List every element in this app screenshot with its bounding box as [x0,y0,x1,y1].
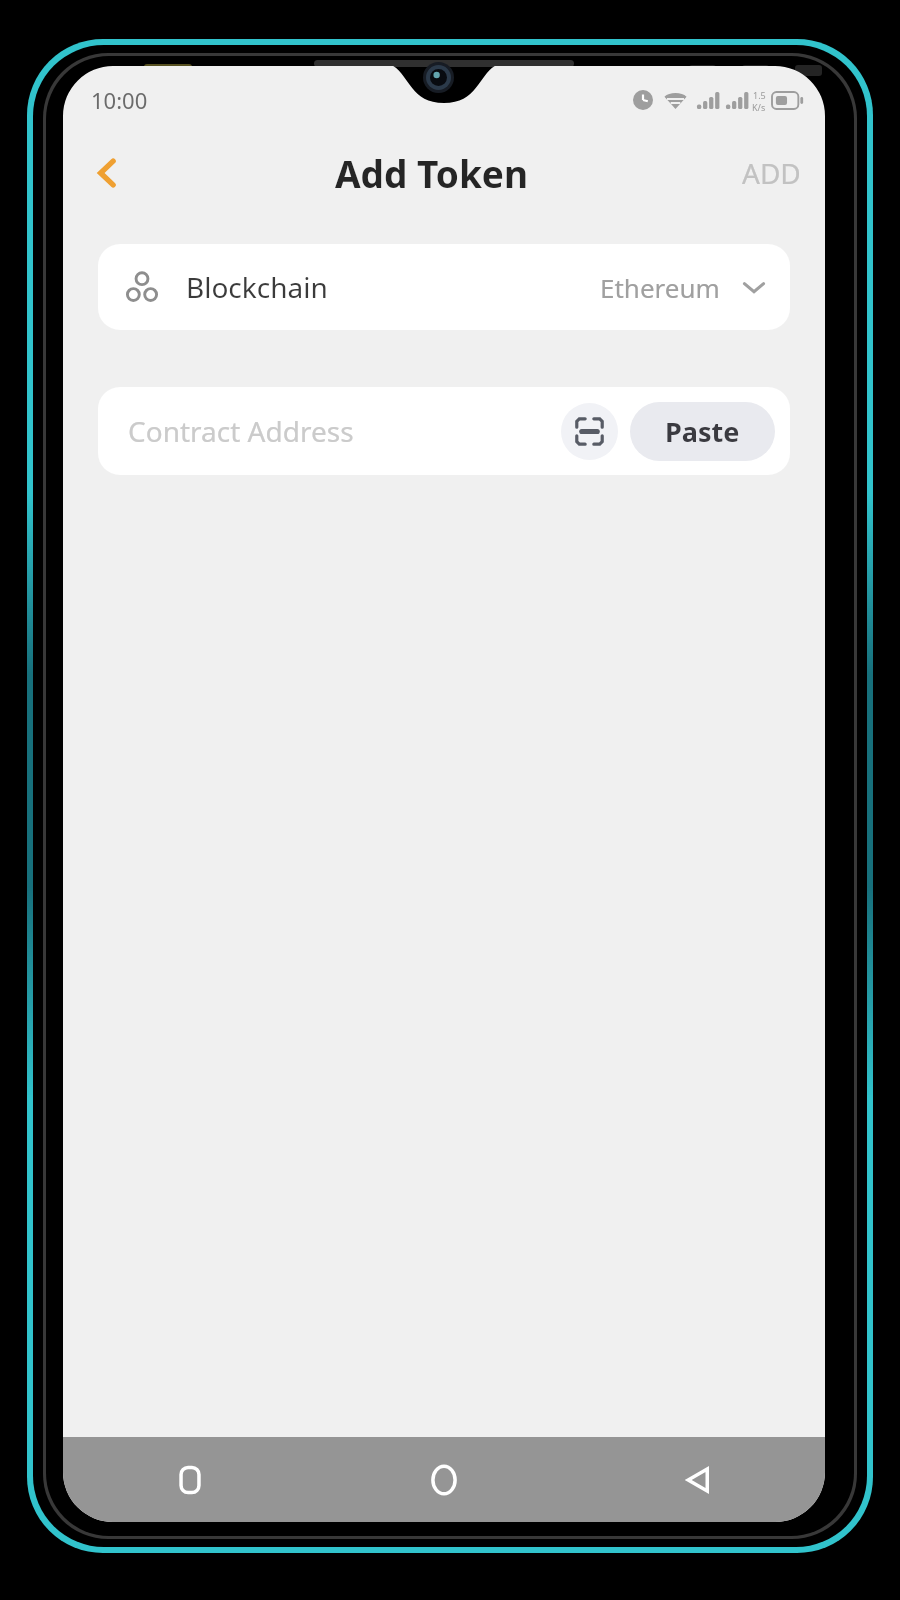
staticText: 1.5 [753,89,766,101]
staticText: 10:00 [91,85,148,115]
button[interactable]: Back [75,140,141,206]
staticText: Add Token [335,148,528,198]
button[interactable]: Blockchain [98,244,790,330]
button[interactable]: Recent apps [63,1437,317,1522]
button[interactable]: ADD [718,140,825,206]
button[interactable]: Home [317,1437,571,1522]
button[interactable]: Back [571,1437,825,1522]
staticText: Ethereum [600,270,720,305]
staticText: Paste [665,413,740,450]
staticText: Blockchain [186,268,328,306]
button[interactable]: Scan QR code [561,403,618,460]
button[interactable]: Paste [630,402,775,461]
staticText: K/s [752,101,766,111]
staticText: Contract Address [128,412,354,450]
staticText: ADD [742,154,801,192]
